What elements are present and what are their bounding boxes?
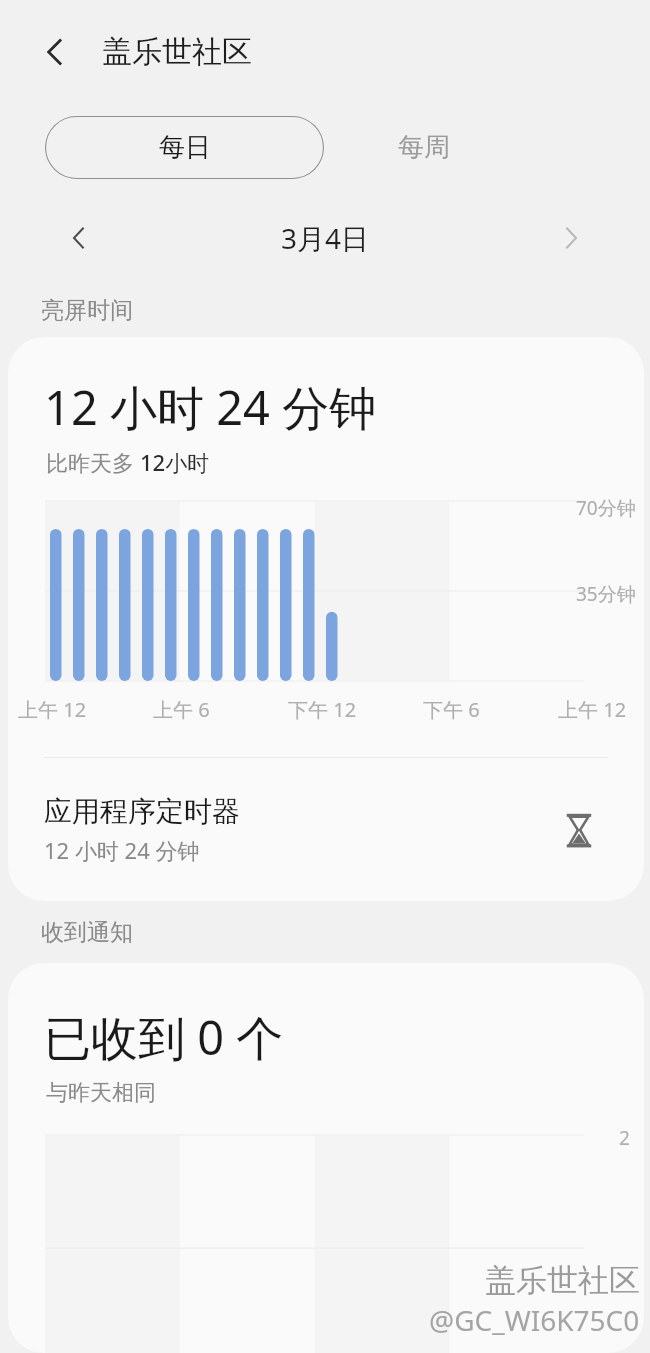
staticText: 下午 12 [288, 696, 357, 723]
staticText: 与昨天相同 [46, 1079, 156, 1107]
staticText: 每周 [398, 131, 450, 164]
staticText: 应用程序定时器 [44, 794, 240, 829]
staticText: 盖乐世社区 [485, 1261, 640, 1300]
staticText: 下午 6 [423, 696, 480, 723]
staticText: 比昨天多 [46, 447, 140, 477]
staticText: 12 小时 24 分钟 [44, 375, 377, 439]
staticText: 上午 12 [558, 696, 627, 723]
button[interactable]: 每周 [324, 116, 524, 179]
staticText: 70分钟 [576, 495, 636, 521]
staticText: 每日 [159, 131, 211, 164]
staticText: 已收到 0 个 [44, 1005, 284, 1069]
staticText: 收到通知 [41, 918, 133, 947]
staticText: 盖乐世社区 [102, 33, 252, 71]
staticText: 3月4日 [281, 219, 370, 257]
button[interactable]: 每日 [45, 116, 324, 179]
staticText: 上午 6 [153, 696, 210, 723]
staticText: @GC_WI6K75C0 [429, 1301, 640, 1339]
staticText: 12 小时 24 分钟 [44, 835, 200, 865]
staticText: 35分钟 [576, 581, 636, 607]
staticText: 上午 12 [18, 696, 87, 723]
button[interactable]: Previous day [54, 213, 104, 263]
button[interactable]: 应用程序定时器 [8, 758, 644, 901]
button[interactable]: Next day [546, 213, 596, 263]
staticText: 2 [619, 1125, 630, 1151]
staticText: 亮屏时间 [41, 296, 133, 325]
staticText: 12小时 [140, 447, 210, 477]
button[interactable]: Back [28, 25, 82, 79]
